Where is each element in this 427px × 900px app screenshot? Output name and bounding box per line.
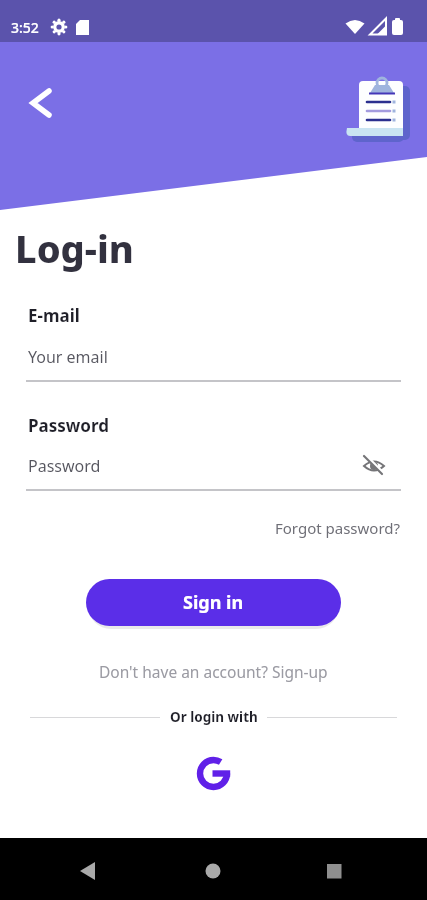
button[interactable] xyxy=(20,82,62,124)
staticText: Or login with xyxy=(170,708,258,726)
staticText: Log-in xyxy=(15,222,134,274)
button[interactable]: Password xyxy=(26,447,401,491)
button[interactable] xyxy=(196,756,231,791)
staticText: E-mail xyxy=(28,304,80,327)
staticText: Password xyxy=(28,455,101,477)
button[interactable]: Sign in xyxy=(86,579,341,626)
staticText: Don't have an account? Sign-up xyxy=(99,661,328,682)
staticText: Your email xyxy=(28,346,108,368)
staticText: Forgot password? xyxy=(275,518,401,538)
staticText: Sign in xyxy=(183,590,244,615)
staticText: Password xyxy=(28,414,109,437)
button[interactable] xyxy=(340,60,427,155)
staticText: 3:52 xyxy=(11,18,39,37)
button[interactable]: Forgot password? xyxy=(275,518,401,538)
button[interactable] xyxy=(143,838,285,900)
button[interactable]: Don't have an account? Sign-up xyxy=(99,661,328,682)
button[interactable] xyxy=(285,838,427,900)
button[interactable] xyxy=(0,838,143,900)
button[interactable]: Your email xyxy=(26,338,401,382)
